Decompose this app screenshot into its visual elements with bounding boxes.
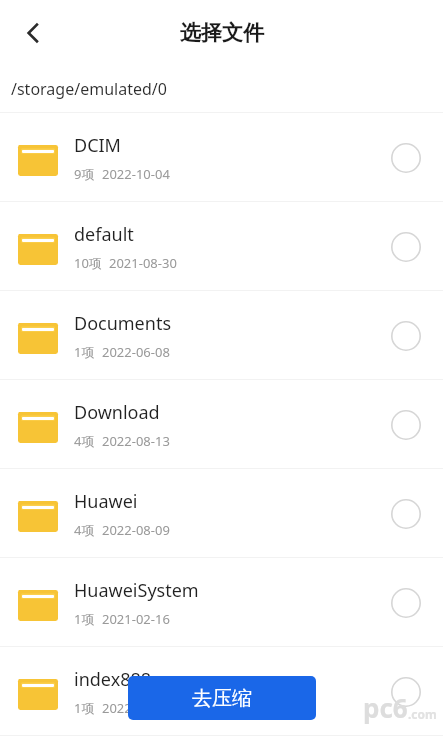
button[interactable]: Select index888 — [380, 666, 432, 718]
staticText: 9项 — [74, 165, 95, 183]
staticText: .com — [408, 706, 437, 722]
staticText: 4项 — [74, 521, 95, 539]
staticText: 10项 — [74, 254, 102, 272]
staticText: 2022-08-13 — [102, 432, 170, 450]
button[interactable]: DCIM — [0, 113, 443, 202]
button[interactable]: Download — [0, 380, 443, 469]
staticText: /storage/emulated/0 — [11, 78, 167, 100]
staticText: pc6 — [363, 690, 408, 725]
staticText: 1项 — [74, 343, 95, 361]
button[interactable]: HuaweiSystem — [0, 558, 443, 647]
staticText: 2021-02-16 — [102, 610, 170, 628]
button[interactable]: Select HuaweiSystem — [380, 577, 432, 629]
staticText: default — [74, 222, 134, 247]
button[interactable]: Documents — [0, 291, 443, 380]
button[interactable]: default — [0, 202, 443, 291]
staticText: Documents — [74, 311, 172, 336]
staticText: Huawei — [74, 489, 138, 514]
button[interactable]: Huawei — [0, 469, 443, 558]
staticText: 4项 — [74, 432, 95, 450]
staticText: 2022-10-04 — [102, 165, 170, 183]
button[interactable]: Select Huawei — [380, 488, 432, 540]
button[interactable]: 去压缩 — [128, 676, 316, 720]
staticText: 选择文件 — [180, 20, 264, 46]
staticText: HuaweiSystem — [74, 578, 199, 603]
staticText: Download — [74, 400, 160, 425]
staticText: 1项 — [74, 699, 95, 717]
staticText: 1项 — [74, 610, 95, 628]
staticText: 去压缩 — [192, 686, 252, 711]
button[interactable]: Select default — [380, 221, 432, 273]
button[interactable]: Select DCIM — [380, 132, 432, 184]
button[interactable]: index888 — [0, 647, 443, 736]
staticText: 2022-07-11 — [102, 699, 170, 717]
staticText: index888 — [74, 667, 152, 692]
staticText: DCIM — [74, 133, 121, 158]
staticText: 2022-06-08 — [102, 343, 170, 361]
button[interactable]: Back — [10, 10, 56, 56]
staticText: 2021-08-30 — [109, 254, 177, 272]
button[interactable]: Select Download — [380, 399, 432, 451]
staticText: 2022-08-09 — [102, 521, 170, 539]
button[interactable]: Select Documents — [380, 310, 432, 362]
